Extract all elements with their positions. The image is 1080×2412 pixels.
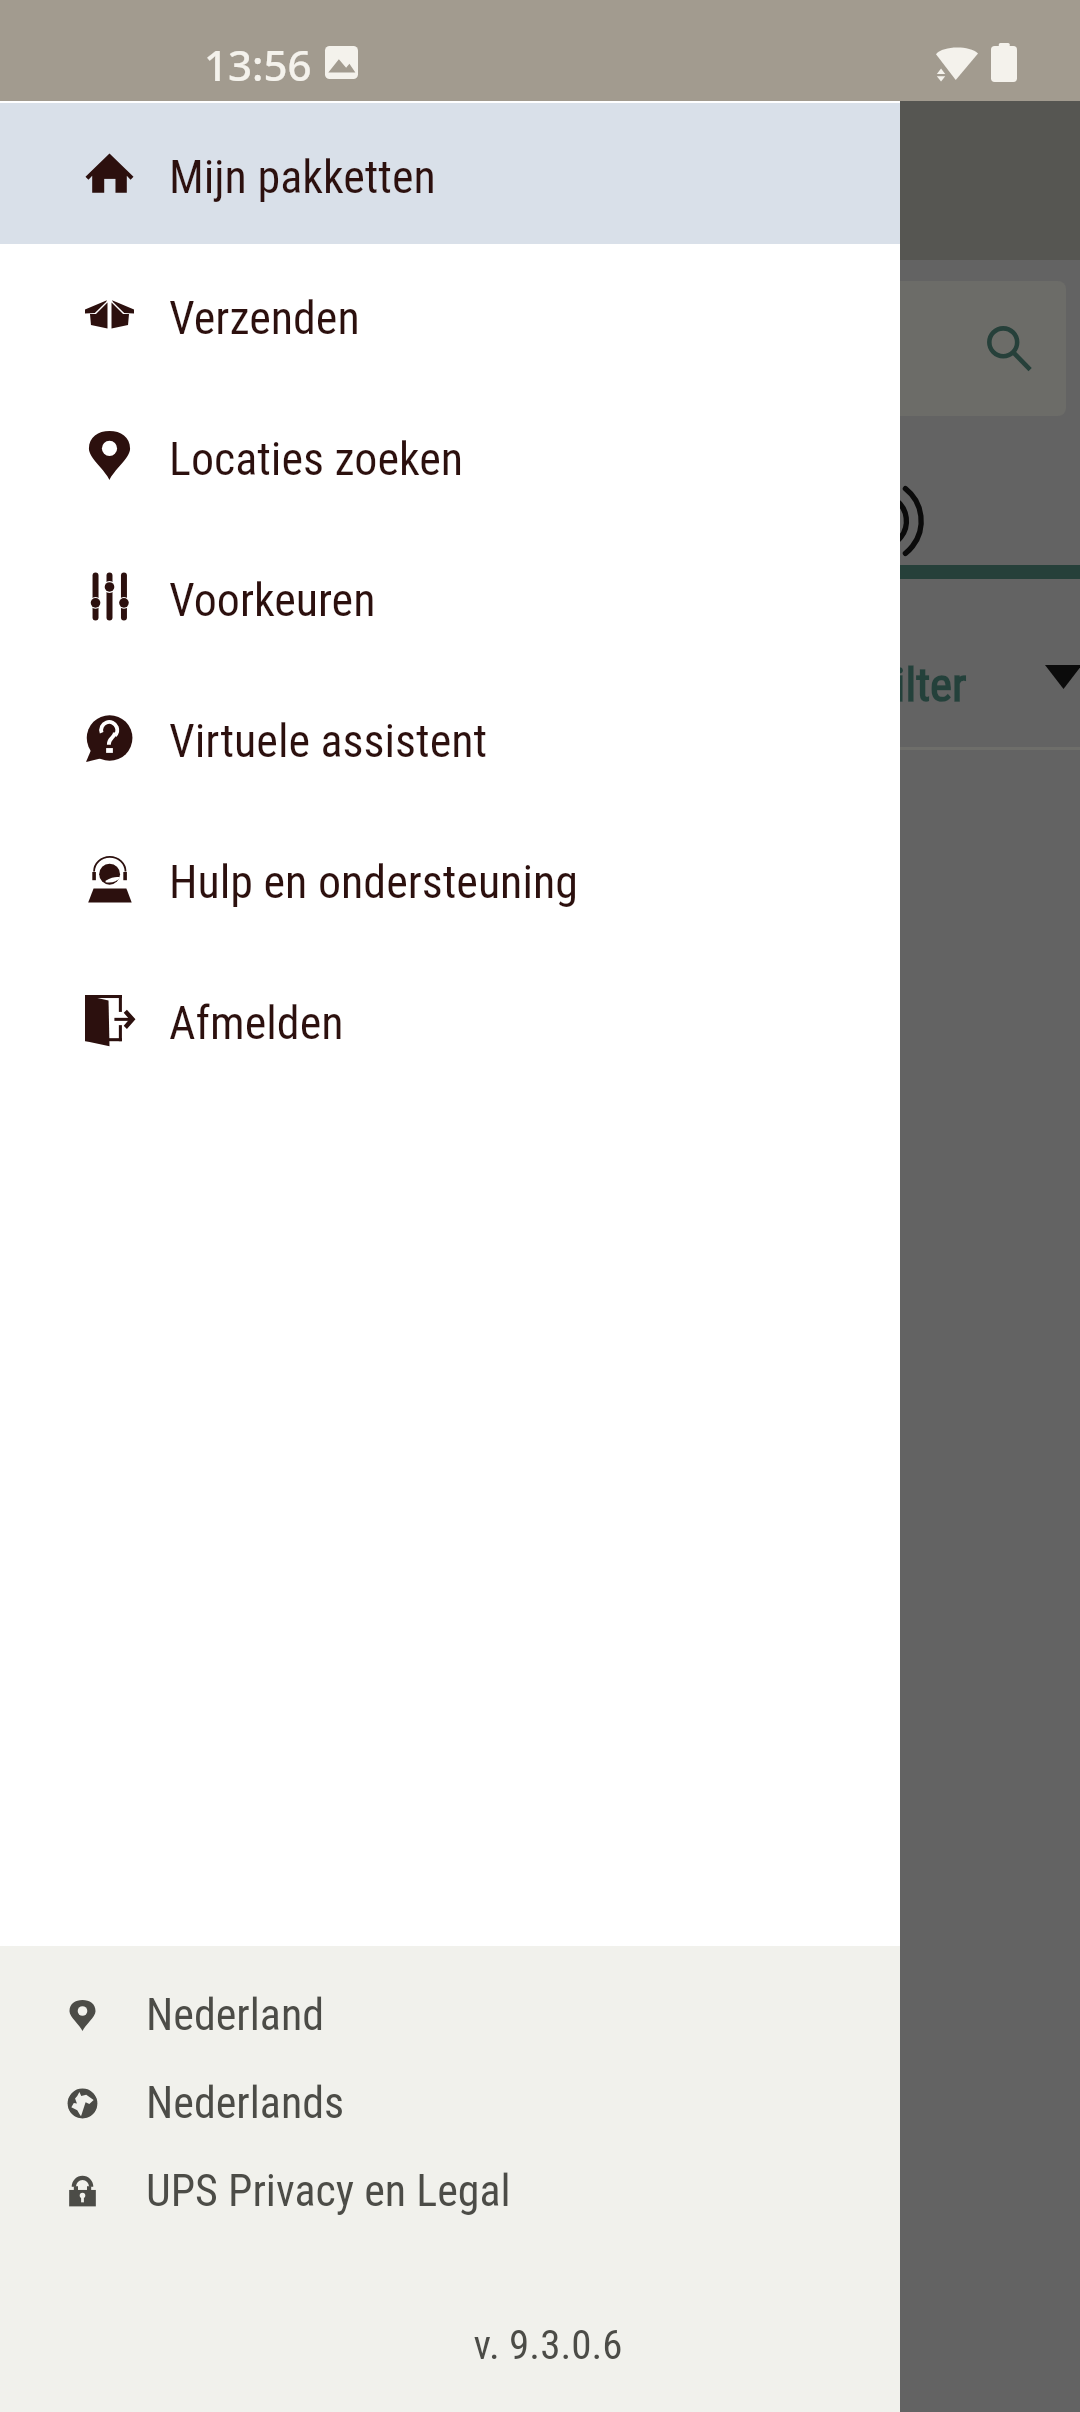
button[interactable]: Mijn pakketten (0, 103, 900, 244)
staticText: Virtuele assistent (169, 714, 488, 768)
button[interactable]: Hulp en ondersteuning (0, 808, 900, 949)
staticText: Afmelden (169, 996, 344, 1050)
button[interactable]: Nederland (0, 1971, 900, 2059)
staticText: Verzenden (169, 291, 360, 345)
staticText: UPS Privacy en Legal (146, 2165, 511, 2217)
other: Search (985, 325, 1033, 373)
button[interactable]: UPS Privacy en Legal (0, 2147, 900, 2235)
staticText: Mijn pakketten (169, 150, 436, 204)
staticText: Hulp en ondersteuning (169, 855, 578, 909)
staticText: Nederlands (146, 2077, 345, 2129)
button[interactable]: Virtuele assistent (0, 667, 900, 808)
button[interactable]: Locaties zoeken (0, 385, 900, 526)
button[interactable]: Voorkeuren (0, 526, 900, 667)
button[interactable]: Verzenden (0, 244, 900, 385)
staticText: Filter (872, 657, 967, 712)
button[interactable]: Nederlands (0, 2059, 900, 2147)
staticText: Voorkeuren (169, 573, 376, 627)
staticText: Nederland (146, 1989, 325, 2041)
staticText: v. 9.3.0.6 (196, 2321, 900, 2369)
button[interactable]: Afmelden (0, 949, 900, 1090)
staticText: 13:56 (204, 36, 312, 93)
staticText: Locaties zoeken (169, 432, 464, 486)
